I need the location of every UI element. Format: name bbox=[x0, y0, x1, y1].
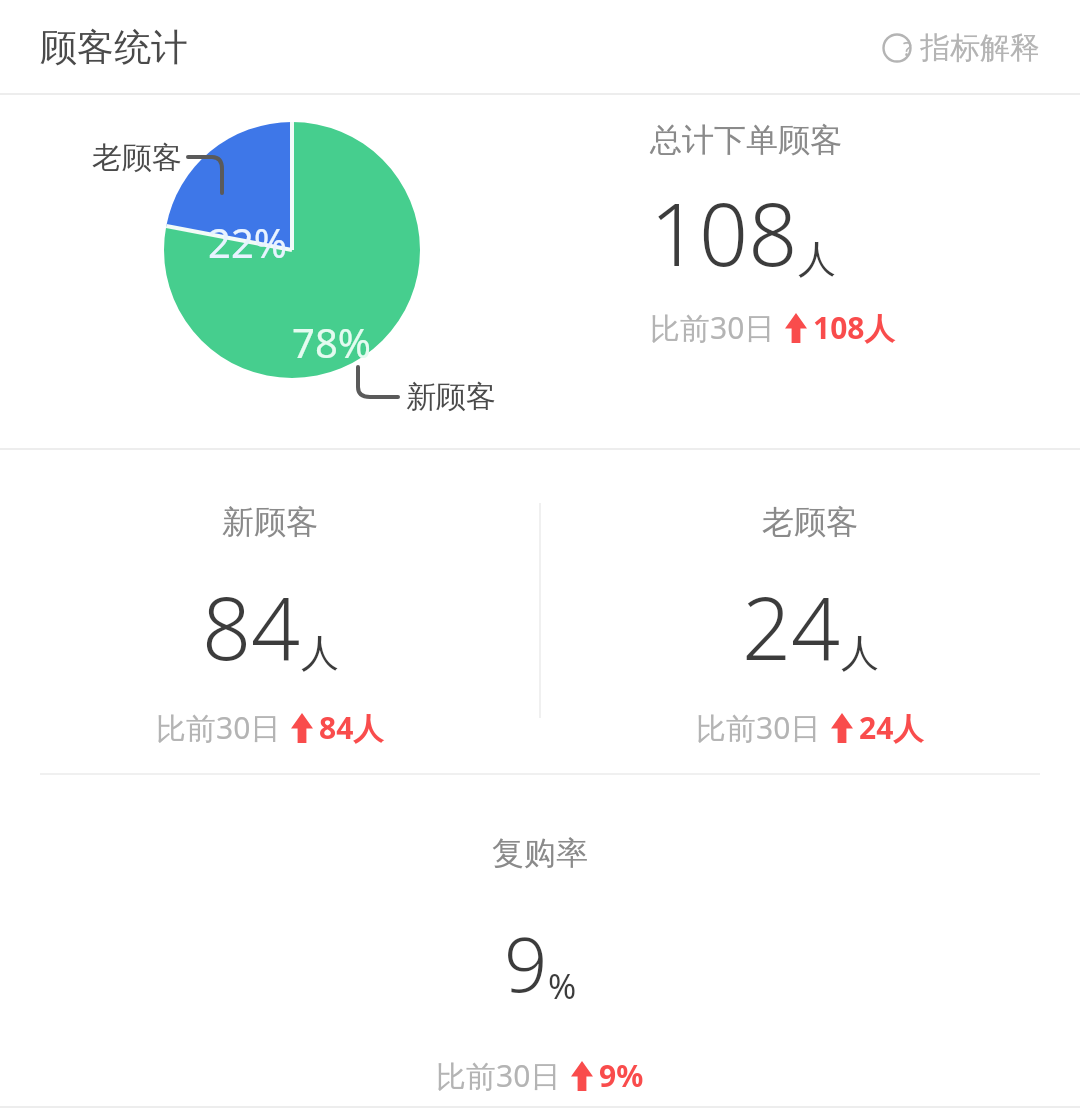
staticText: % bbox=[548, 963, 577, 1009]
staticText: 24人 bbox=[859, 707, 924, 748]
staticText: 比前30日 bbox=[436, 1055, 561, 1096]
staticText: 人 bbox=[798, 235, 836, 283]
other: 指标解释 bbox=[892, 33, 922, 63]
staticText: ? bbox=[903, 35, 912, 62]
staticText: 108 bbox=[650, 174, 798, 291]
staticText: 108人 bbox=[813, 307, 895, 348]
staticText: 新顾客 bbox=[222, 502, 318, 542]
staticText: 指标解释 bbox=[920, 29, 1040, 67]
staticText: 总计下单顾客 bbox=[650, 120, 842, 160]
staticText: 78% bbox=[292, 315, 371, 369]
staticText: 复购率 bbox=[492, 833, 588, 873]
staticText: 24 bbox=[742, 568, 841, 685]
staticText: 比前30日 bbox=[156, 707, 281, 748]
staticText: 人 bbox=[841, 629, 879, 677]
button[interactable]: 复购率 bbox=[0, 775, 1080, 1108]
staticText: 9 bbox=[504, 911, 548, 1015]
staticText: 84人 bbox=[319, 707, 384, 748]
staticText: 老顾客 bbox=[762, 502, 858, 542]
staticText: 新顾客 bbox=[406, 378, 496, 416]
staticText: 老顾客 bbox=[92, 139, 182, 177]
button[interactable]: 新顾客 bbox=[0, 450, 540, 775]
staticText: 比前30日 bbox=[696, 707, 821, 748]
button[interactable]: 老顾客 bbox=[540, 450, 1080, 775]
staticText: 人 bbox=[301, 629, 339, 677]
staticText: 顾客统计 bbox=[40, 24, 188, 71]
staticText: 22% bbox=[208, 215, 287, 269]
button[interactable]: 指标解释 bbox=[882, 29, 1040, 67]
staticText: 9% bbox=[599, 1055, 644, 1096]
staticText: 比前30日 bbox=[650, 307, 775, 348]
staticText: 84 bbox=[202, 568, 301, 685]
